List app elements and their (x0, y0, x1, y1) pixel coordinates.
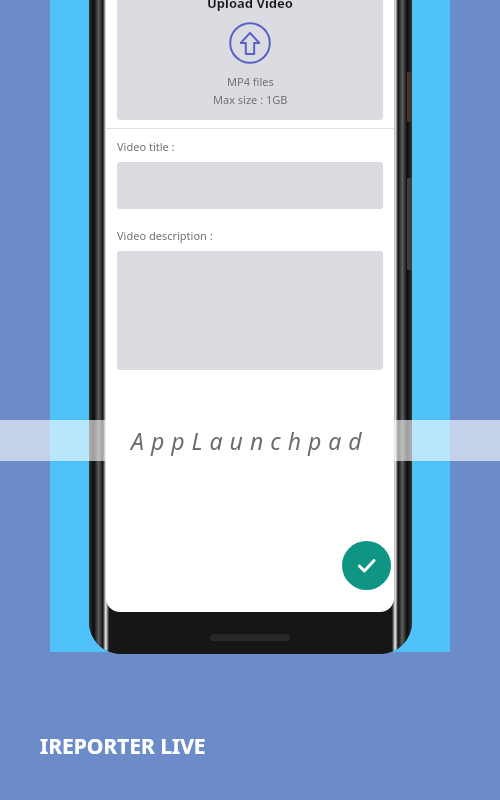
staticText: Video title : (117, 139, 175, 154)
staticText: IREPORTER LIVE (40, 732, 206, 761)
staticText: Video description : (117, 228, 213, 243)
staticText: MP4 files (227, 74, 274, 89)
staticText: AppLaunchpad (131, 425, 369, 456)
staticText: Upload Video (207, 0, 293, 12)
staticText: Max size : 1GB (213, 92, 288, 107)
button[interactable]: Submit (342, 541, 391, 590)
button[interactable]: Upload Video (117, 0, 383, 120)
